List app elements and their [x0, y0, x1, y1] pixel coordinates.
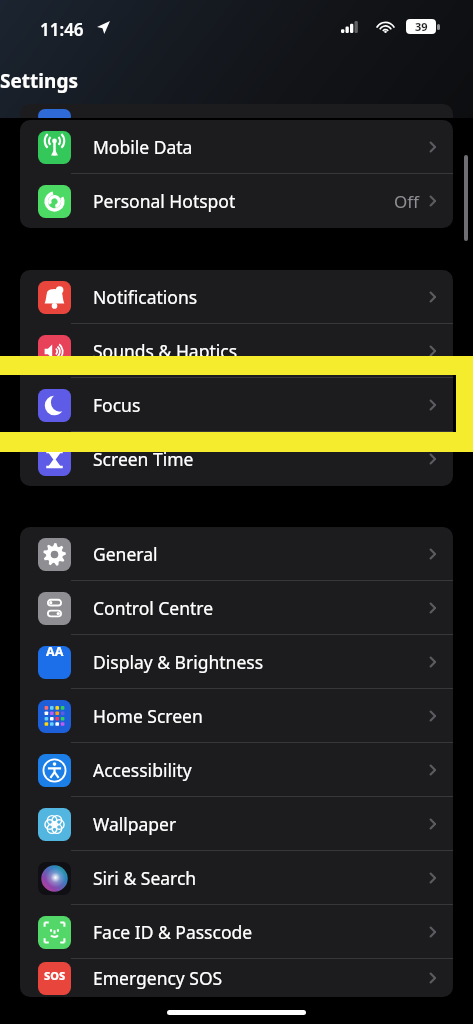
button[interactable]: Focus: [20, 378, 453, 432]
staticText: Emergency SOS: [93, 966, 223, 990]
staticText: SOS: [44, 968, 66, 983]
staticText: 39: [415, 19, 428, 34]
button[interactable]: Face ID & Passcode: [20, 905, 453, 959]
button[interactable]: General: [20, 527, 453, 581]
staticText: Settings: [0, 68, 78, 94]
staticText: Control Centre: [93, 596, 214, 620]
button[interactable]: Screen Time: [20, 432, 453, 486]
button[interactable]: Notifications: [20, 270, 453, 324]
staticText: Mobile Data: [93, 135, 193, 159]
staticText: Personal Hotspot: [93, 189, 236, 213]
button[interactable]: Mobile Data: [20, 120, 453, 174]
staticText: Wallpaper: [93, 812, 177, 836]
staticText: 11:46: [40, 18, 84, 41]
staticText: Display & Brightness: [93, 650, 264, 674]
button[interactable]: Sounds & Haptics: [20, 324, 453, 378]
button[interactable]: Wallpaper: [20, 797, 453, 851]
button[interactable]: Display & Brightness: [20, 635, 453, 689]
button[interactable]: Home Screen: [20, 689, 453, 743]
staticText: Off: [394, 190, 419, 213]
button[interactable]: Control Centre: [20, 581, 453, 635]
button[interactable]: Personal Hotspot: [20, 174, 453, 228]
staticText: Sounds & Haptics: [93, 339, 238, 363]
staticText: Screen Time: [93, 447, 194, 471]
button[interactable]: Siri & Search: [20, 851, 453, 905]
staticText: Notifications: [93, 285, 198, 309]
staticText: Siri & Search: [93, 866, 197, 890]
staticText: Home Screen: [93, 704, 203, 728]
staticText: Accessibility: [93, 758, 192, 782]
staticText: AA: [46, 643, 64, 660]
staticText: General: [93, 542, 158, 566]
button[interactable]: Accessibility: [20, 743, 453, 797]
button[interactable]: Emergency SOS: [20, 959, 453, 997]
staticText: Face ID & Passcode: [93, 920, 253, 944]
staticText: Focus: [93, 393, 141, 417]
